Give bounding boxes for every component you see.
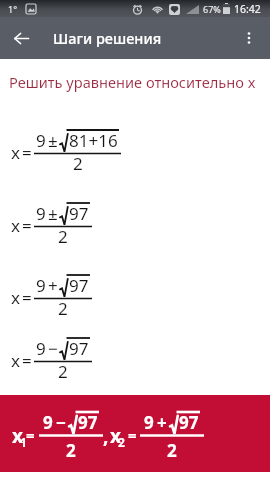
staticText: x — [11, 286, 20, 309]
staticText: Шаги решения — [53, 28, 162, 48]
staticText: 2 — [66, 439, 76, 462]
staticText: + — [157, 411, 167, 434]
button[interactable]: Back — [0, 17, 42, 59]
staticText: 2 — [58, 360, 68, 383]
staticText: 2 — [58, 225, 68, 248]
staticText: = — [26, 425, 35, 445]
staticText: , — [103, 423, 109, 449]
staticText: − — [48, 337, 58, 360]
staticText: 9 — [43, 411, 53, 434]
staticText: 9 — [36, 337, 46, 360]
staticText: = — [128, 425, 137, 445]
button[interactable]: More options — [228, 17, 270, 59]
staticText: x — [11, 141, 20, 164]
staticText: x — [11, 214, 20, 237]
staticText: 2 — [167, 439, 177, 462]
staticText: = — [22, 141, 32, 164]
button[interactable]: x — [0, 395, 270, 472]
staticText: x — [110, 423, 121, 449]
staticText: − — [56, 411, 66, 434]
staticText: = — [22, 214, 32, 237]
staticText: + — [48, 274, 58, 297]
staticText: 9 — [36, 202, 46, 225]
staticText: 2 — [118, 434, 125, 450]
staticText: ± — [48, 129, 58, 152]
staticText: 9 — [36, 274, 46, 297]
staticText: 97 — [69, 274, 89, 297]
staticText: x — [12, 423, 23, 449]
staticText: 97 — [69, 337, 89, 360]
staticText: 97 — [179, 411, 199, 434]
staticText: 2 — [58, 297, 68, 320]
staticText: ± — [48, 202, 58, 225]
staticText: 81+16 — [69, 129, 118, 152]
staticText: 2 — [73, 152, 83, 175]
staticText: 9 — [144, 411, 154, 434]
staticText: 1 — [20, 434, 27, 450]
staticText: 67% — [203, 3, 221, 15]
staticText: 16:42 — [234, 2, 261, 16]
staticText: 97 — [69, 202, 89, 225]
staticText: = — [22, 286, 32, 309]
staticText: Решить уравнение относительно x — [9, 72, 256, 92]
staticText: = — [22, 349, 32, 372]
staticText: 1° — [8, 3, 18, 15]
staticText: 97 — [78, 411, 98, 434]
staticText: x — [11, 349, 20, 372]
staticText: 9 — [36, 129, 46, 152]
